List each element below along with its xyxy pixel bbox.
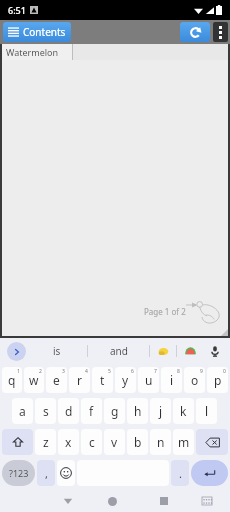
staticText: 8 — [177, 368, 180, 375]
staticText: q — [8, 372, 16, 388]
button[interactable]: e — [46, 367, 67, 393]
button[interactable]: Voice input — [203, 338, 227, 364]
button[interactable]: n — [150, 429, 171, 455]
button[interactable]: Enter — [191, 460, 228, 486]
button[interactable]: p — [207, 367, 228, 393]
button[interactable]: b — [127, 429, 148, 455]
button[interactable]: t — [92, 367, 113, 393]
staticText: m — [178, 434, 190, 450]
staticText: b — [134, 434, 142, 450]
staticText: 2 — [39, 368, 42, 375]
button[interactable]: j — [150, 398, 171, 424]
staticText: 9 — [200, 368, 203, 375]
button[interactable]: z — [35, 429, 56, 455]
button[interactable]: x — [58, 429, 79, 455]
button[interactable]: , — [37, 460, 55, 486]
staticText: Page 1 of 2 — [144, 306, 186, 317]
button[interactable]: Recents — [138, 490, 189, 512]
staticText: Contents — [23, 25, 66, 39]
staticText: and — [110, 344, 128, 358]
button[interactable]: Home — [87, 490, 138, 512]
staticText: 5 — [108, 368, 111, 375]
staticText: p — [214, 372, 222, 388]
button[interactable]: ?123 — [2, 460, 35, 486]
button[interactable]: and — [88, 338, 149, 364]
button[interactable]: q — [2, 367, 22, 393]
button[interactable]: Expand suggestions — [7, 342, 26, 361]
button[interactable]: a — [12, 398, 33, 424]
staticText: Watermelon — [6, 46, 59, 58]
staticText: a — [19, 403, 26, 419]
staticText: , — [45, 466, 48, 481]
staticText: 6 — [131, 368, 134, 375]
staticText: k — [180, 403, 187, 419]
staticText: 3 — [62, 368, 65, 375]
staticText: i — [170, 372, 174, 388]
staticText: x — [65, 434, 72, 450]
staticText: 1 — [17, 368, 20, 375]
staticText: 7 — [154, 368, 157, 375]
staticText: ?123 — [9, 467, 29, 479]
staticText: f — [89, 403, 94, 419]
button[interactable]: Contents — [3, 22, 71, 42]
button[interactable]: y — [115, 367, 136, 393]
button[interactable]: Back — [48, 490, 87, 512]
button[interactable]: More options — [213, 22, 228, 42]
button[interactable]: k — [173, 398, 194, 424]
staticText: 6:51 — [8, 4, 26, 16]
button[interactable]: w — [24, 367, 44, 393]
button[interactable]: . — [171, 460, 189, 486]
button[interactable]: h — [127, 398, 148, 424]
staticText: z — [43, 434, 49, 450]
staticText: is — [53, 344, 61, 358]
button[interactable]: c — [81, 429, 102, 455]
button[interactable]: m — [173, 429, 194, 455]
button[interactable]: Shift — [2, 429, 33, 455]
button[interactable]: Switch keyboard — [189, 490, 224, 512]
button[interactable]: Watermelon emoji — [177, 338, 203, 364]
button[interactable]: u — [138, 367, 159, 393]
staticText: g — [111, 403, 119, 419]
button[interactable]: Backspace — [196, 429, 228, 455]
button[interactable]: l — [196, 398, 217, 424]
staticText: . — [179, 466, 182, 481]
button[interactable]: i — [161, 367, 182, 393]
button[interactable]: is — [26, 338, 87, 364]
staticText: o — [191, 372, 199, 388]
staticText: 4 — [85, 368, 88, 375]
staticText: 0 — [223, 368, 226, 375]
button[interactable]: v — [104, 429, 125, 455]
staticText: u — [145, 372, 153, 388]
button[interactable]: d — [58, 398, 79, 424]
staticText: h — [134, 403, 142, 419]
button[interactable]: Emoji — [57, 460, 75, 486]
staticText: e — [53, 372, 60, 388]
staticText: l — [205, 403, 209, 419]
staticText: t — [100, 372, 105, 388]
staticText: r — [77, 372, 82, 388]
button[interactable]: Lemon emoji — [150, 338, 176, 364]
button[interactable]: s — [35, 398, 56, 424]
staticText: j — [159, 403, 163, 419]
staticText: s — [43, 403, 49, 419]
button[interactable]: r — [69, 367, 90, 393]
staticText: y — [122, 372, 129, 388]
button[interactable]: Watermelon — [2, 44, 72, 60]
staticText: n — [157, 434, 165, 450]
staticText: d — [65, 403, 73, 419]
staticText: v — [111, 434, 118, 450]
button[interactable]: g — [104, 398, 125, 424]
button[interactable]: o — [184, 367, 205, 393]
staticText: c — [89, 434, 95, 450]
staticText: w — [29, 372, 39, 388]
button[interactable]: f — [81, 398, 102, 424]
button[interactable]: Refresh — [180, 22, 210, 42]
